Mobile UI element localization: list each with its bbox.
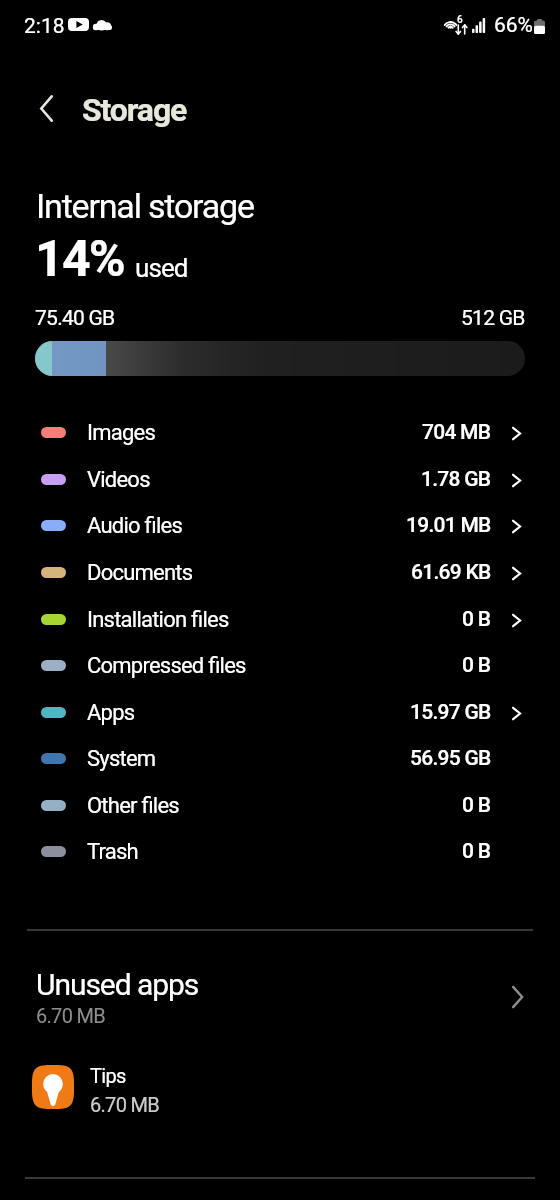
staticText: 75.40 GB <box>35 306 115 331</box>
button[interactable]: Back <box>22 86 70 130</box>
button[interactable]: Other files <box>0 782 560 829</box>
staticText: Compressed files <box>87 653 246 679</box>
staticText: 6 <box>457 14 463 26</box>
staticText: 704 MB <box>422 420 491 445</box>
staticText: 15.97 GB <box>410 700 491 725</box>
button[interactable]: System <box>0 735 560 782</box>
staticText: Unused apps <box>36 967 199 1002</box>
staticText: Images <box>87 420 155 446</box>
staticText: Storage <box>82 91 187 129</box>
staticText: Audio files <box>87 513 182 539</box>
staticText: Internal storage <box>36 186 254 226</box>
button[interactable]: Images <box>0 409 560 456</box>
staticText: Videos <box>87 467 150 493</box>
button[interactable]: Compressed files <box>0 642 560 689</box>
button[interactable]: Tips <box>0 1062 560 1118</box>
staticText: used <box>135 253 188 283</box>
button[interactable]: Documents <box>0 549 560 596</box>
button[interactable]: Unused apps <box>0 961 560 1033</box>
staticText: 14% <box>35 230 125 289</box>
staticText: 6.70 MB <box>90 1093 159 1116</box>
button[interactable]: Trash <box>0 828 560 875</box>
staticText: Documents <box>87 560 193 586</box>
button[interactable]: Apps <box>0 689 560 736</box>
button[interactable]: Installation files <box>0 596 560 643</box>
staticText: 6.70 MB <box>36 1004 105 1027</box>
staticText: System <box>87 746 156 772</box>
staticText: Installation files <box>87 607 229 633</box>
button[interactable]: Videos <box>0 456 560 503</box>
button[interactable]: Audio files <box>0 502 560 549</box>
staticText: 56.95 GB <box>410 746 491 771</box>
staticText: 66% <box>494 13 533 38</box>
staticText: 19.01 MB <box>406 513 491 538</box>
staticText: 0 B <box>462 653 491 678</box>
staticText: 2:18 <box>24 14 65 39</box>
staticText: 0 B <box>462 793 491 818</box>
staticText: 1.78 GB <box>421 467 491 492</box>
staticText: 512 GB <box>461 306 525 331</box>
staticText: Other files <box>87 793 179 819</box>
staticText: 61.69 KB <box>411 560 491 585</box>
staticText: Tips <box>90 1064 126 1087</box>
staticText: Trash <box>87 839 138 865</box>
staticText: Apps <box>87 700 135 726</box>
staticText: 0 B <box>462 607 491 632</box>
staticText: 0 B <box>462 839 491 864</box>
